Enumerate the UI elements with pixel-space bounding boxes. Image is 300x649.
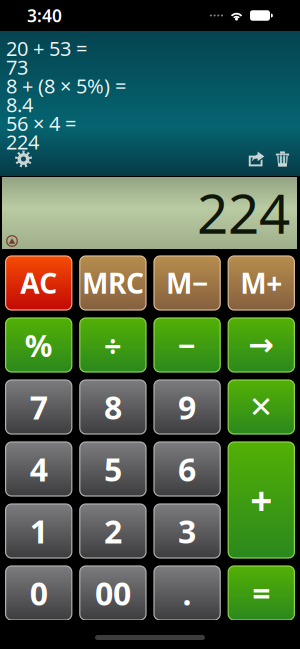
button[interactable]: 5 xyxy=(80,442,146,496)
button[interactable]: 8 xyxy=(80,380,146,434)
staticText: 5 xyxy=(104,448,122,490)
button[interactable]: − xyxy=(154,318,220,372)
staticText: 8.4 xyxy=(6,91,33,118)
staticText: . xyxy=(183,572,192,614)
button[interactable]: % xyxy=(6,318,72,372)
staticText: 73 xyxy=(6,54,28,80)
button[interactable]: 00 xyxy=(80,566,146,620)
staticText: 6 xyxy=(178,448,196,490)
button[interactable]: + xyxy=(228,442,294,558)
staticText: 3:40 xyxy=(27,4,62,27)
staticText: 3 xyxy=(178,510,196,552)
staticText: 4 xyxy=(30,448,48,490)
staticText: AC xyxy=(20,264,57,302)
staticText: MRC xyxy=(82,264,144,302)
button[interactable]: 3 xyxy=(154,504,220,558)
staticText: 1 xyxy=(30,510,48,552)
button[interactable]: 7 xyxy=(6,380,72,434)
staticText: − xyxy=(178,325,196,365)
staticText: 0 xyxy=(30,572,48,614)
staticText: 56 × 4 = xyxy=(6,110,76,136)
staticText: = xyxy=(252,572,270,614)
staticText: 2 xyxy=(104,510,122,552)
button[interactable]: M− xyxy=(154,256,220,310)
staticText: 9 xyxy=(178,386,196,428)
staticText: M+ xyxy=(240,264,282,302)
button[interactable]: M+ xyxy=(228,256,294,310)
button[interactable]: 9 xyxy=(154,380,220,434)
button[interactable]: 2 xyxy=(80,504,146,558)
staticText: 224 xyxy=(6,129,39,155)
staticText: ✕ xyxy=(249,390,274,424)
button[interactable]: AC xyxy=(6,256,72,310)
button[interactable]: 0 xyxy=(6,566,72,620)
button[interactable]: ÷ xyxy=(80,318,146,372)
button[interactable]: MRC xyxy=(80,256,146,310)
staticText: 224 xyxy=(197,176,290,249)
button[interactable]: = xyxy=(228,566,294,620)
button[interactable]: 4 xyxy=(6,442,72,496)
button[interactable]: Settings xyxy=(9,147,37,171)
button[interactable]: 6 xyxy=(154,442,220,496)
button[interactable]: Clear history xyxy=(269,147,295,171)
staticText: M− xyxy=(166,264,208,302)
staticText: 00 xyxy=(95,572,131,614)
button[interactable]: → xyxy=(228,318,294,372)
button[interactable]: Share xyxy=(243,147,269,171)
button[interactable]: ✕ xyxy=(228,380,294,434)
staticText: → xyxy=(248,328,274,362)
staticText: % xyxy=(25,325,53,365)
staticText: 8 xyxy=(104,386,122,428)
button[interactable]: 1 xyxy=(6,504,72,558)
staticText: 7 xyxy=(30,386,48,428)
staticText: + xyxy=(250,474,272,526)
staticText: ÷ xyxy=(104,325,122,365)
staticText: 20 + 53 = xyxy=(6,35,87,62)
button[interactable]: . xyxy=(154,566,220,620)
staticText: 8 + (8 × 5%) = xyxy=(6,72,126,99)
